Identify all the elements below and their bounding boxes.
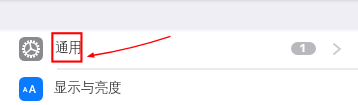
staticText: A	[23, 85, 28, 94]
staticText: 1	[299, 42, 308, 52]
button[interactable]: Open General settings	[333, 43, 341, 55]
staticText: A	[29, 82, 36, 96]
button[interactable]: 通用	[0, 28, 358, 69]
staticText: 显示与亮度	[54, 79, 122, 96]
staticText: 通用	[55, 39, 82, 56]
button[interactable]: A	[0, 69, 358, 105]
